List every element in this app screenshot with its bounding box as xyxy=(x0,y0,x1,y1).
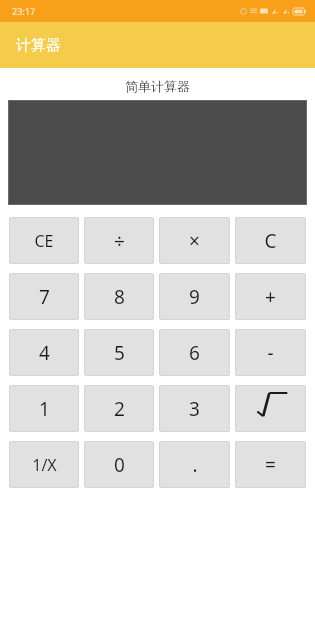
staticText: C xyxy=(264,228,277,254)
staticText: × xyxy=(189,228,200,254)
button[interactable]: C xyxy=(235,217,306,264)
staticText: 9 xyxy=(189,284,200,310)
staticText: 1/X xyxy=(32,454,57,476)
button[interactable]: CE xyxy=(9,217,79,264)
staticText: 7 xyxy=(39,284,50,310)
staticText: CE xyxy=(34,230,54,252)
staticText: + xyxy=(265,284,276,310)
button[interactable]: 3 xyxy=(159,385,230,432)
button[interactable]: Square root xyxy=(235,385,306,432)
staticText: 0 xyxy=(114,452,125,478)
button[interactable]: 9 xyxy=(159,273,230,320)
staticText: - xyxy=(267,340,274,366)
staticText: = xyxy=(265,452,276,478)
staticText: 8 xyxy=(114,284,125,310)
staticText: 计算器 xyxy=(16,36,61,55)
staticText: 2 xyxy=(114,396,125,422)
button[interactable]: 6 xyxy=(159,329,230,376)
button[interactable]: 2 xyxy=(84,385,154,432)
staticText: 4 xyxy=(39,340,50,366)
button[interactable]: 4 xyxy=(9,329,79,376)
button[interactable]: + xyxy=(235,273,306,320)
button[interactable]: 7 xyxy=(9,273,79,320)
staticText: 5 xyxy=(114,340,125,366)
button[interactable]: × xyxy=(159,217,230,264)
button[interactable]: = xyxy=(235,441,306,488)
button[interactable]: . xyxy=(159,441,230,488)
button[interactable]: 1/X xyxy=(9,441,79,488)
button[interactable]: 8 xyxy=(84,273,154,320)
staticText: ÷ xyxy=(114,228,125,254)
button[interactable]: 1 xyxy=(9,385,79,432)
staticText: 6 xyxy=(189,340,200,366)
button[interactable]: 0 xyxy=(84,441,154,488)
staticText: . xyxy=(192,452,198,478)
button[interactable]: ÷ xyxy=(84,217,154,264)
button[interactable]: 5 xyxy=(84,329,154,376)
staticText: 3 xyxy=(189,396,200,422)
staticText: 1 xyxy=(39,396,50,422)
staticText: 23:17 xyxy=(12,5,36,17)
staticText: 简单计算器 xyxy=(125,78,190,94)
button[interactable]: - xyxy=(235,329,306,376)
